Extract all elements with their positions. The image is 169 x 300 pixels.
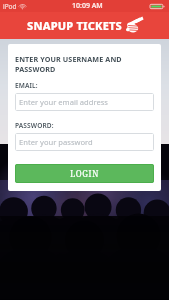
button[interactable]: Enter your email address (15, 93, 154, 111)
staticText: EMAIL: (15, 81, 38, 90)
button[interactable]: LOGIN (15, 164, 154, 183)
button[interactable]: SNAPUP TICKETS (27, 16, 143, 35)
staticText: iPod (3, 2, 17, 11)
staticText: SNAPUP TICKETS (27, 18, 122, 33)
staticText: Enter your password (19, 137, 93, 147)
button[interactable]: Enter your password (15, 133, 154, 151)
staticText: ENTER YOUR USERNAME AND PASSWORD (15, 54, 154, 74)
staticText: Enter your email address (19, 97, 108, 107)
other: SnapUp Tickets logo (124, 16, 143, 35)
staticText: PASSWORD: (15, 121, 54, 130)
staticText: 10:09 AM (72, 1, 103, 11)
staticText: LOGIN (70, 168, 99, 179)
